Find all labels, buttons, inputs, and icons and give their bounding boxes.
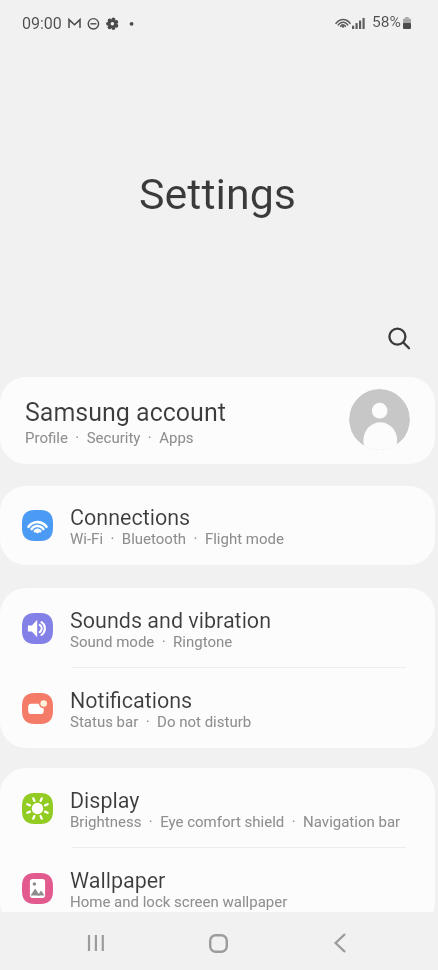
button[interactable]: Notifications bbox=[0, 668, 435, 748]
button[interactable]: Recents bbox=[74, 914, 118, 970]
staticText: 09:00 bbox=[22, 14, 62, 33]
button[interactable]: Wallpaper bbox=[0, 848, 435, 928]
staticText: 58% bbox=[372, 13, 401, 31]
staticText: Profile · Security · Apps bbox=[25, 429, 194, 447]
staticText: Wallpaper bbox=[70, 868, 166, 893]
staticText: Sounds and vibration bbox=[70, 608, 272, 633]
staticText: Home and lock screen wallpaper bbox=[70, 893, 288, 911]
button[interactable]: Samsung account bbox=[0, 377, 435, 464]
button[interactable]: Connections bbox=[0, 486, 435, 565]
button[interactable]: Back bbox=[318, 914, 362, 970]
staticText: Samsung account bbox=[25, 398, 226, 427]
button[interactable]: Sounds and vibration bbox=[0, 588, 435, 668]
staticText: Wi-Fi · Bluetooth · Flight mode bbox=[70, 530, 284, 548]
staticText: Connections bbox=[70, 505, 191, 530]
button[interactable]: Home bbox=[196, 914, 240, 970]
button[interactable]: Search bbox=[378, 317, 423, 362]
staticText: Display bbox=[70, 788, 140, 813]
staticText: Settings bbox=[139, 169, 297, 219]
button[interactable]: Display bbox=[0, 768, 435, 848]
staticText: Sound mode · Ringtone bbox=[70, 633, 233, 651]
staticText: Status bar · Do not disturb bbox=[70, 713, 252, 731]
staticText: Brightness · Eye comfort shield · Naviga… bbox=[70, 813, 401, 831]
staticText: Notifications bbox=[70, 688, 193, 713]
